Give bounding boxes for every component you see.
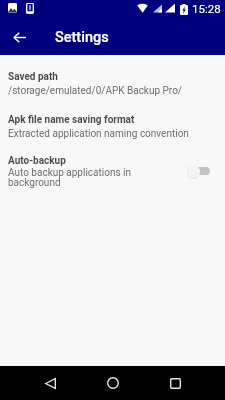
button[interactable]: Home xyxy=(90,366,135,400)
button[interactable]: Back xyxy=(0,20,39,55)
button[interactable]: Apk file name saving format xyxy=(0,114,225,140)
staticText: Auto-backup xyxy=(8,155,66,167)
button[interactable]: Auto-backup xyxy=(0,155,225,189)
staticText: Apk file name saving format xyxy=(8,114,135,126)
staticText: 15:28 xyxy=(192,2,221,15)
button[interactable]: Recent apps xyxy=(153,366,198,400)
button[interactable]: Saved path xyxy=(0,71,225,97)
staticText: /storage/emulated/0/APK Backup Pro/ xyxy=(8,85,182,97)
staticText: Saved path xyxy=(8,71,58,83)
button[interactable]: Toggle auto-backup xyxy=(187,157,219,185)
staticText: Auto backup applications in background xyxy=(8,167,136,189)
staticText: Settings xyxy=(55,29,109,46)
button[interactable]: Back xyxy=(28,366,73,400)
staticText: Extracted application naming convention xyxy=(8,128,189,140)
